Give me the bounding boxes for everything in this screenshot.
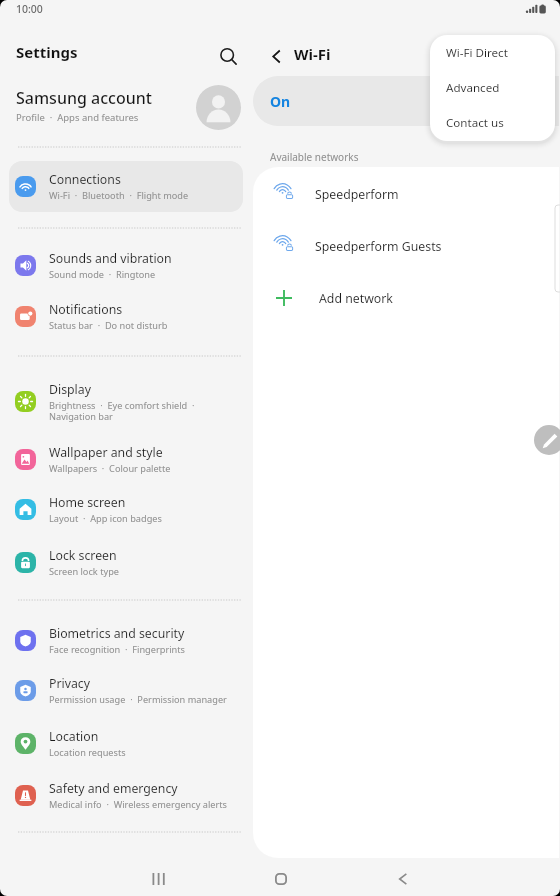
- button[interactable]: Connections: [9, 161, 243, 212]
- button[interactable]: Home screen: [9, 484, 243, 535]
- staticText: Biometrics and security: [49, 625, 185, 642]
- staticText: Speedperform: [315, 186, 399, 203]
- staticText: Wi-Fi · Bluetooth · Flight mode: [49, 189, 189, 202]
- button[interactable]: Wallpaper and style: [9, 434, 243, 485]
- staticText: Location: [49, 728, 99, 745]
- staticText: Face recognition · Fingerprints: [49, 643, 185, 656]
- button[interactable]: Speedperform: [253, 174, 559, 214]
- button[interactable]: Contact us: [430, 106, 555, 141]
- button[interactable]: Advanced: [430, 71, 555, 106]
- staticText: Screen lock type: [49, 565, 119, 578]
- button[interactable]: Location: [9, 718, 243, 769]
- staticText: Location requests: [49, 746, 126, 759]
- staticText: Connections: [49, 171, 121, 188]
- staticText: Medical info · Wireless emergency alerts: [49, 798, 227, 811]
- staticText: Notifications: [49, 301, 123, 318]
- button[interactable]: Biometrics and security: [9, 615, 243, 666]
- button[interactable]: Home: [258, 856, 303, 896]
- button[interactable]: Search: [210, 38, 246, 74]
- button[interactable]: Speedperform Guests: [253, 226, 559, 266]
- staticText: Display: [49, 381, 91, 398]
- button[interactable]: Safety and emergency: [9, 770, 243, 821]
- staticText: Lock screen: [49, 547, 117, 564]
- staticText: Available networks: [270, 150, 359, 164]
- staticText: Contact us: [446, 115, 504, 131]
- button[interactable]: Wi-Fi Direct: [430, 36, 555, 71]
- staticText: Sounds and vibration: [49, 250, 172, 267]
- staticText: 10:00: [16, 2, 43, 16]
- staticText: Advanced: [446, 80, 500, 96]
- button[interactable]: Lock screen: [9, 537, 243, 588]
- button[interactable]: Samsung account: [0, 80, 252, 132]
- button[interactable]: Sounds and vibration: [9, 240, 243, 291]
- button[interactable]: Recent apps: [135, 856, 180, 896]
- button[interactable]: Add network: [253, 278, 559, 318]
- staticText: Wi-Fi Direct: [446, 45, 508, 61]
- button[interactable]: On: [253, 76, 559, 126]
- staticText: Privacy: [49, 675, 91, 692]
- staticText: Wi-Fi: [294, 44, 331, 64]
- button[interactable]: Back: [258, 38, 294, 74]
- staticText: Speedperform Guests: [315, 238, 442, 255]
- button[interactable]: Edit: [534, 425, 560, 455]
- staticText: Add network: [319, 290, 393, 307]
- staticText: Home screen: [49, 494, 126, 511]
- staticText: Sound mode · Ringtone: [49, 268, 156, 281]
- button[interactable]: Back: [380, 856, 425, 896]
- staticText: On: [270, 92, 291, 111]
- button[interactable]: Display: [9, 376, 243, 427]
- staticText: Wallpapers · Colour palette: [49, 462, 171, 475]
- staticText: Layout · App icon badges: [49, 512, 162, 525]
- staticText: Brightness · Eye comfort shield · Naviga…: [49, 399, 195, 423]
- button[interactable]: Privacy: [9, 665, 243, 716]
- staticText: Safety and emergency: [49, 780, 178, 797]
- staticText: Permission usage · Permission manager: [49, 693, 227, 706]
- button[interactable]: Notifications: [9, 291, 243, 342]
- staticText: Settings: [16, 42, 78, 62]
- staticText: Profile · Apps and features: [16, 111, 139, 124]
- staticText: Status bar · Do not disturb: [49, 319, 168, 332]
- staticText: Samsung account: [16, 87, 152, 109]
- staticText: Wallpaper and style: [49, 444, 163, 461]
